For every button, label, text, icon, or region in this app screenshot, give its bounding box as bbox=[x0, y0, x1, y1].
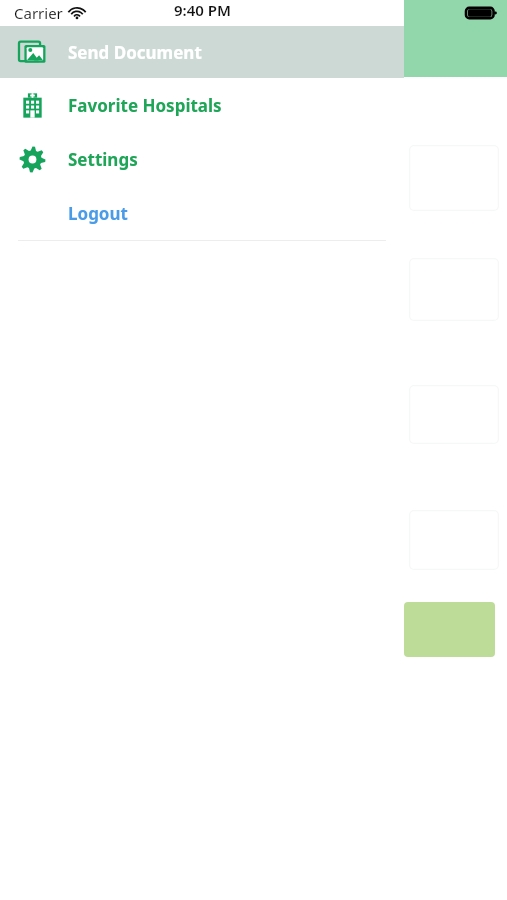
button[interactable] bbox=[404, 602, 495, 657]
staticText: Favorite Hospitals bbox=[68, 94, 222, 117]
staticText: Carrier bbox=[14, 3, 63, 23]
button[interactable]: Settings bbox=[0, 132, 404, 186]
staticText: Settings bbox=[68, 148, 138, 171]
staticText: 9:40 PM bbox=[174, 0, 231, 20]
other: Battery bbox=[466, 5, 498, 21]
button[interactable]: Favorite Hospitals bbox=[0, 78, 404, 132]
staticText: Send Document bbox=[68, 41, 202, 64]
button[interactable]: Send Document bbox=[0, 26, 404, 78]
button[interactable]: Logout bbox=[0, 186, 404, 240]
staticText: Logout bbox=[68, 202, 128, 225]
